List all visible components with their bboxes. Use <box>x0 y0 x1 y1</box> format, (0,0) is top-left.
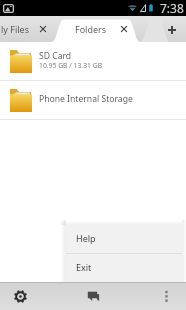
staticText: 10.95 GB / 13.31 GB <box>39 61 103 70</box>
button[interactable]: Phone Internal Storage <box>0 81 186 119</box>
staticText: Exit <box>76 261 92 273</box>
button[interactable]: SD Card <box>0 42 186 80</box>
staticText: SD Card <box>39 50 72 62</box>
button[interactable]: Exit <box>66 254 182 282</box>
button[interactable]: Folders <box>56 16 140 42</box>
staticText: Phone Internal Storage <box>39 93 133 105</box>
button[interactable]: Settings <box>0 282 40 310</box>
staticText: ly Files <box>1 23 29 35</box>
staticText: Folders <box>75 23 107 35</box>
button[interactable]: Help <box>66 225 182 253</box>
staticText: Help <box>76 232 96 244</box>
button[interactable]: New tab <box>157 16 186 42</box>
button[interactable]: More options <box>146 282 186 310</box>
staticText: 7:38 <box>160 0 184 16</box>
button[interactable]: Messages <box>73 282 113 310</box>
button[interactable]: ly Files <box>0 16 56 42</box>
